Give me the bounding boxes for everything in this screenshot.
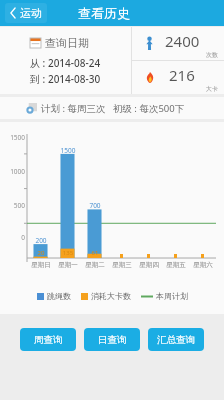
staticText: 20: [30, 249, 52, 257]
staticText: 1500: [57, 146, 79, 155]
staticText: 汇总查询: [157, 334, 195, 346]
button[interactable]: 运动: [5, 3, 47, 23]
button[interactable]: 汇总查询: [148, 328, 204, 351]
button[interactable]: 查询日期: [0, 27, 131, 94]
staticText: 星期五: [163, 261, 189, 269]
staticText: 计划 : 每周三次 初级 : 每次500下: [41, 102, 185, 115]
button[interactable]: 2400: [132, 27, 224, 60]
staticText: 216: [169, 65, 195, 85]
staticText: 0: [2, 233, 25, 242]
staticText: 大卡: [206, 85, 218, 93]
staticText: 700: [84, 201, 106, 210]
button[interactable]: 计划 : 每周三次 初级 : 每次500下: [0, 97, 224, 119]
staticText: 1000: [2, 167, 25, 176]
staticText: 星期二: [82, 261, 108, 269]
staticText: 跳绳数: [47, 291, 71, 301]
staticText: 星期日: [28, 261, 54, 269]
staticText: 查看历史: [78, 5, 130, 21]
staticText: 到 : 2014-08-30: [30, 72, 101, 86]
staticText: 1500: [2, 133, 25, 142]
staticText: 星期三: [109, 261, 135, 269]
staticText: 本周计划: [156, 291, 188, 301]
button[interactable]: 216: [132, 61, 224, 94]
staticText: 61: [84, 249, 106, 257]
staticText: 135: [57, 249, 79, 257]
staticText: 500: [2, 201, 25, 210]
staticText: 查询日期: [45, 36, 89, 50]
button[interactable]: 周查询: [20, 328, 76, 351]
staticText: 次数: [206, 51, 218, 59]
staticText: 日查询: [98, 334, 127, 346]
button[interactable]: 日查询: [84, 328, 140, 351]
staticText: 运动: [20, 6, 42, 20]
staticText: 星期六: [190, 261, 216, 269]
staticText: 星期一: [55, 261, 81, 269]
staticText: 星期四: [136, 261, 162, 269]
staticText: 消耗大卡数: [91, 291, 131, 301]
staticText: 2400: [165, 31, 200, 51]
staticText: 周查询: [34, 334, 63, 346]
staticText: 200: [30, 236, 52, 245]
staticText: 从 : 2014-08-24: [30, 56, 101, 70]
